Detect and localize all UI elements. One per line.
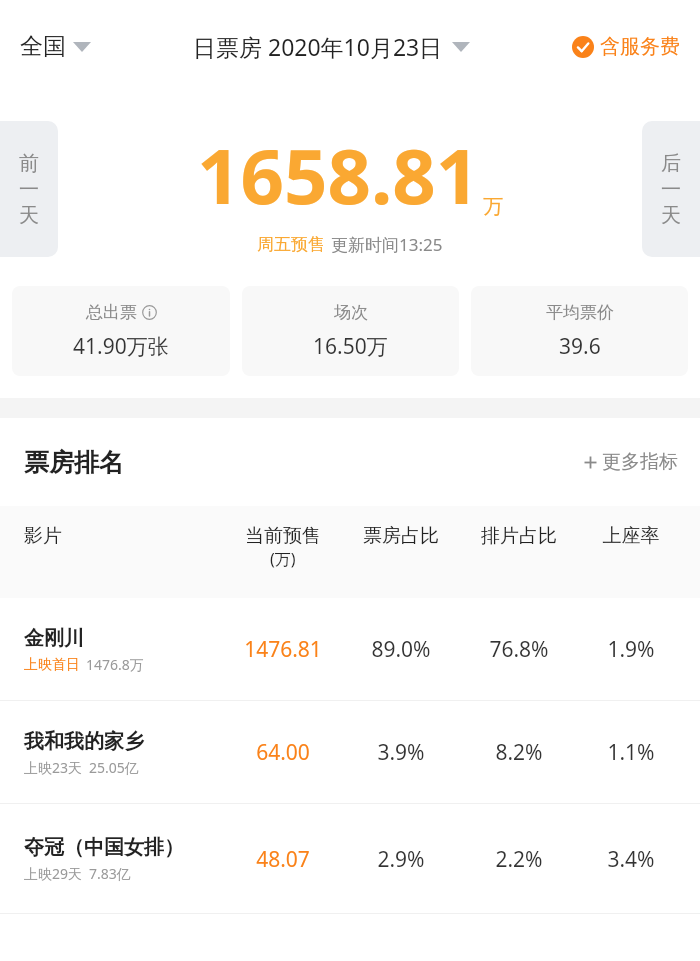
staticText: 3.9%	[342, 738, 460, 767]
button[interactable]: 金刚川	[0, 598, 700, 701]
staticText: 全国	[20, 32, 66, 61]
staticText: 2.2%	[460, 845, 578, 874]
staticText: 1.1%	[578, 738, 684, 767]
staticText: 上映29天	[24, 864, 83, 883]
staticText: 7.83亿	[89, 864, 131, 883]
staticText: 16.50万	[313, 332, 388, 361]
staticText: 平均票价	[546, 302, 614, 323]
button[interactable]: 更多指标	[583, 450, 678, 474]
button[interactable]: 含服务费	[572, 34, 680, 59]
staticText: 64.00	[224, 738, 342, 767]
staticText: 2.9%	[342, 845, 460, 874]
staticText: 76.8%	[460, 635, 578, 664]
button[interactable]: 总出票	[12, 286, 230, 376]
staticText: 票房排名	[24, 447, 124, 478]
button[interactable]: 日票房 2020年10月23日	[193, 31, 470, 62]
staticText: 8.2%	[460, 738, 578, 767]
staticText: 48.07	[224, 845, 342, 874]
staticText: 1658.81	[197, 123, 480, 227]
staticText: 上映23天	[24, 758, 83, 777]
staticText: 日票房 2020年10月23日	[193, 31, 443, 62]
button[interactable]: 后一天	[642, 121, 700, 257]
staticText: 89.0%	[342, 635, 460, 664]
staticText: 更新时间13:25	[331, 233, 443, 256]
staticText: 影片	[24, 524, 224, 548]
staticText: 我和我的家乡	[24, 729, 144, 754]
staticText: 前 一 天	[19, 151, 39, 228]
staticText: 39.6	[559, 332, 601, 361]
staticText: 25.05亿	[89, 758, 139, 777]
staticText: 夺冠（中国女排）	[24, 835, 184, 860]
button[interactable]: 场次	[242, 286, 459, 376]
staticText: 票房占比	[342, 524, 460, 548]
staticText: 排片占比	[460, 524, 578, 548]
staticText: 后 一 天	[661, 151, 681, 228]
staticText: 上映首日	[24, 656, 80, 674]
staticText: 金刚川	[24, 626, 84, 651]
button[interactable]: 夺冠（中国女排）	[0, 804, 700, 914]
button[interactable]: 前一天	[0, 121, 58, 257]
staticText: 1.9%	[578, 635, 684, 664]
staticText: 1476.81	[224, 635, 342, 664]
staticText: 总出票	[86, 302, 137, 323]
staticText: 更多指标	[602, 450, 678, 474]
staticText: 含服务费	[600, 34, 680, 59]
button[interactable]: 平均票价	[471, 286, 688, 376]
staticText: 当前预售	[245, 524, 321, 548]
button[interactable]: 我和我的家乡	[0, 701, 700, 804]
button[interactable]: 全国	[20, 32, 91, 61]
staticText: 3.4%	[578, 845, 684, 874]
staticText: 万	[483, 194, 503, 219]
staticText: 1476.8万	[86, 655, 144, 674]
staticText: (万)	[270, 548, 296, 570]
staticText: 上座率	[578, 524, 684, 548]
staticText: 41.90万张	[73, 332, 169, 361]
staticText: 场次	[334, 302, 368, 323]
staticText: 周五预售	[257, 234, 325, 255]
